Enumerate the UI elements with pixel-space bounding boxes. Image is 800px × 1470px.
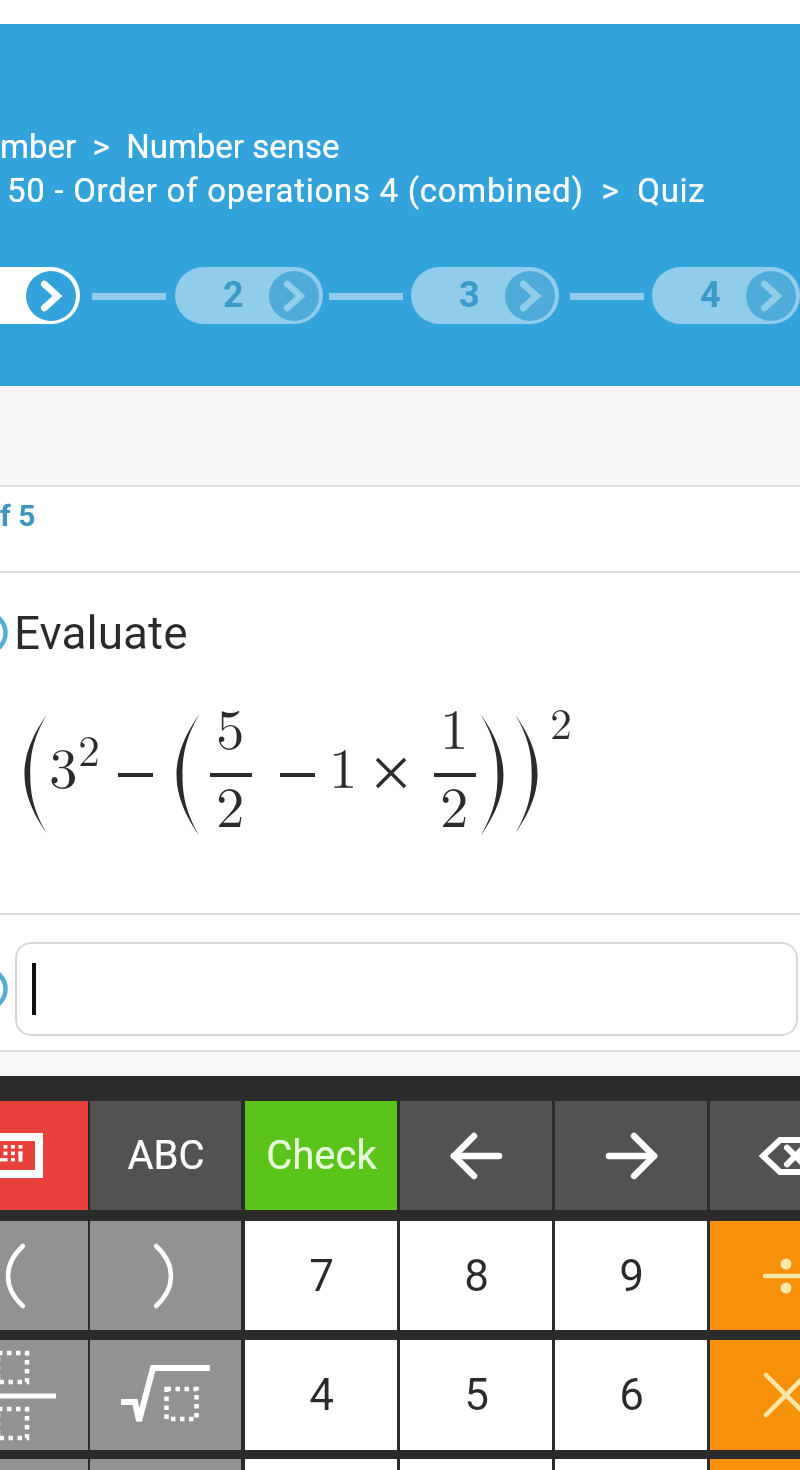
button[interactable]: Move left [400,1101,552,1210]
other: Multiply [764,1373,800,1417]
button[interactable]: 3 [411,267,559,324]
button[interactable]: Divide [710,1221,800,1330]
staticText: Check [266,1132,377,1179]
staticText: 5 [464,1369,489,1421]
other: Backspace [760,1137,800,1175]
other: Close bracket [155,1246,177,1306]
button[interactable]: 2 [175,267,323,324]
staticText: mber > Number sense [0,127,340,166]
button[interactable] [15,942,798,1036]
button[interactable]: Square root [90,1340,241,1450]
staticText: 4 [309,1369,334,1421]
staticText: 3 [459,274,480,316]
staticText: Evaluate [14,606,188,660]
staticText: 2 [550,689,572,751]
button[interactable]: Backspace [710,1101,800,1210]
button[interactable]: ABC [90,1101,241,1210]
button[interactable]: 5 [400,1340,552,1450]
button[interactable]: Multiply [710,1340,800,1450]
staticText: 2 [440,763,469,844]
staticText: 1 [440,685,469,766]
button[interactable]: 4 [652,267,800,324]
staticText: 7 [309,1250,334,1302]
staticText: 4 [700,274,721,316]
staticText: f 5 [0,498,36,533]
staticText: 2 [216,763,245,844]
other: Divide [765,1259,800,1293]
button[interactable]: Check [245,1101,397,1210]
other: Fraction [0,1353,56,1438]
button[interactable]: Step 1 [0,267,80,324]
button[interactable]: Move right [555,1101,707,1210]
other: Move left [451,1135,502,1177]
other: Open bracket [2,1246,24,1306]
staticText: 5 [216,685,245,766]
staticText: ABC [127,1132,205,1179]
other: Hide keyboard [0,1137,39,1174]
other: Square root [121,1368,211,1422]
button[interactable]: Close bracket [90,1221,241,1330]
staticText: 9 [619,1250,644,1302]
other: Question A [0,611,8,655]
button[interactable]: 4 [245,1340,397,1450]
button[interactable]: 8 [400,1221,552,1330]
staticText: 8 [464,1250,489,1302]
button[interactable]: 7 [245,1221,397,1330]
button[interactable]: Open bracket [0,1221,88,1330]
button[interactable]: 6 [555,1340,707,1450]
button[interactable]: Hide keyboard [0,1101,88,1210]
staticText: 6 [619,1369,644,1421]
button[interactable]: 9 [555,1221,707,1330]
staticText: 2 [223,274,244,316]
staticText: 1 [329,724,358,805]
staticText: 3 [49,724,78,805]
button[interactable]: Fraction [0,1340,88,1450]
other: Move right [606,1135,657,1177]
staticText: 2 [78,716,100,778]
other: Answer field marker [0,967,8,1011]
staticText: 50 - Order of operations 4 (combined) > … [7,171,706,210]
